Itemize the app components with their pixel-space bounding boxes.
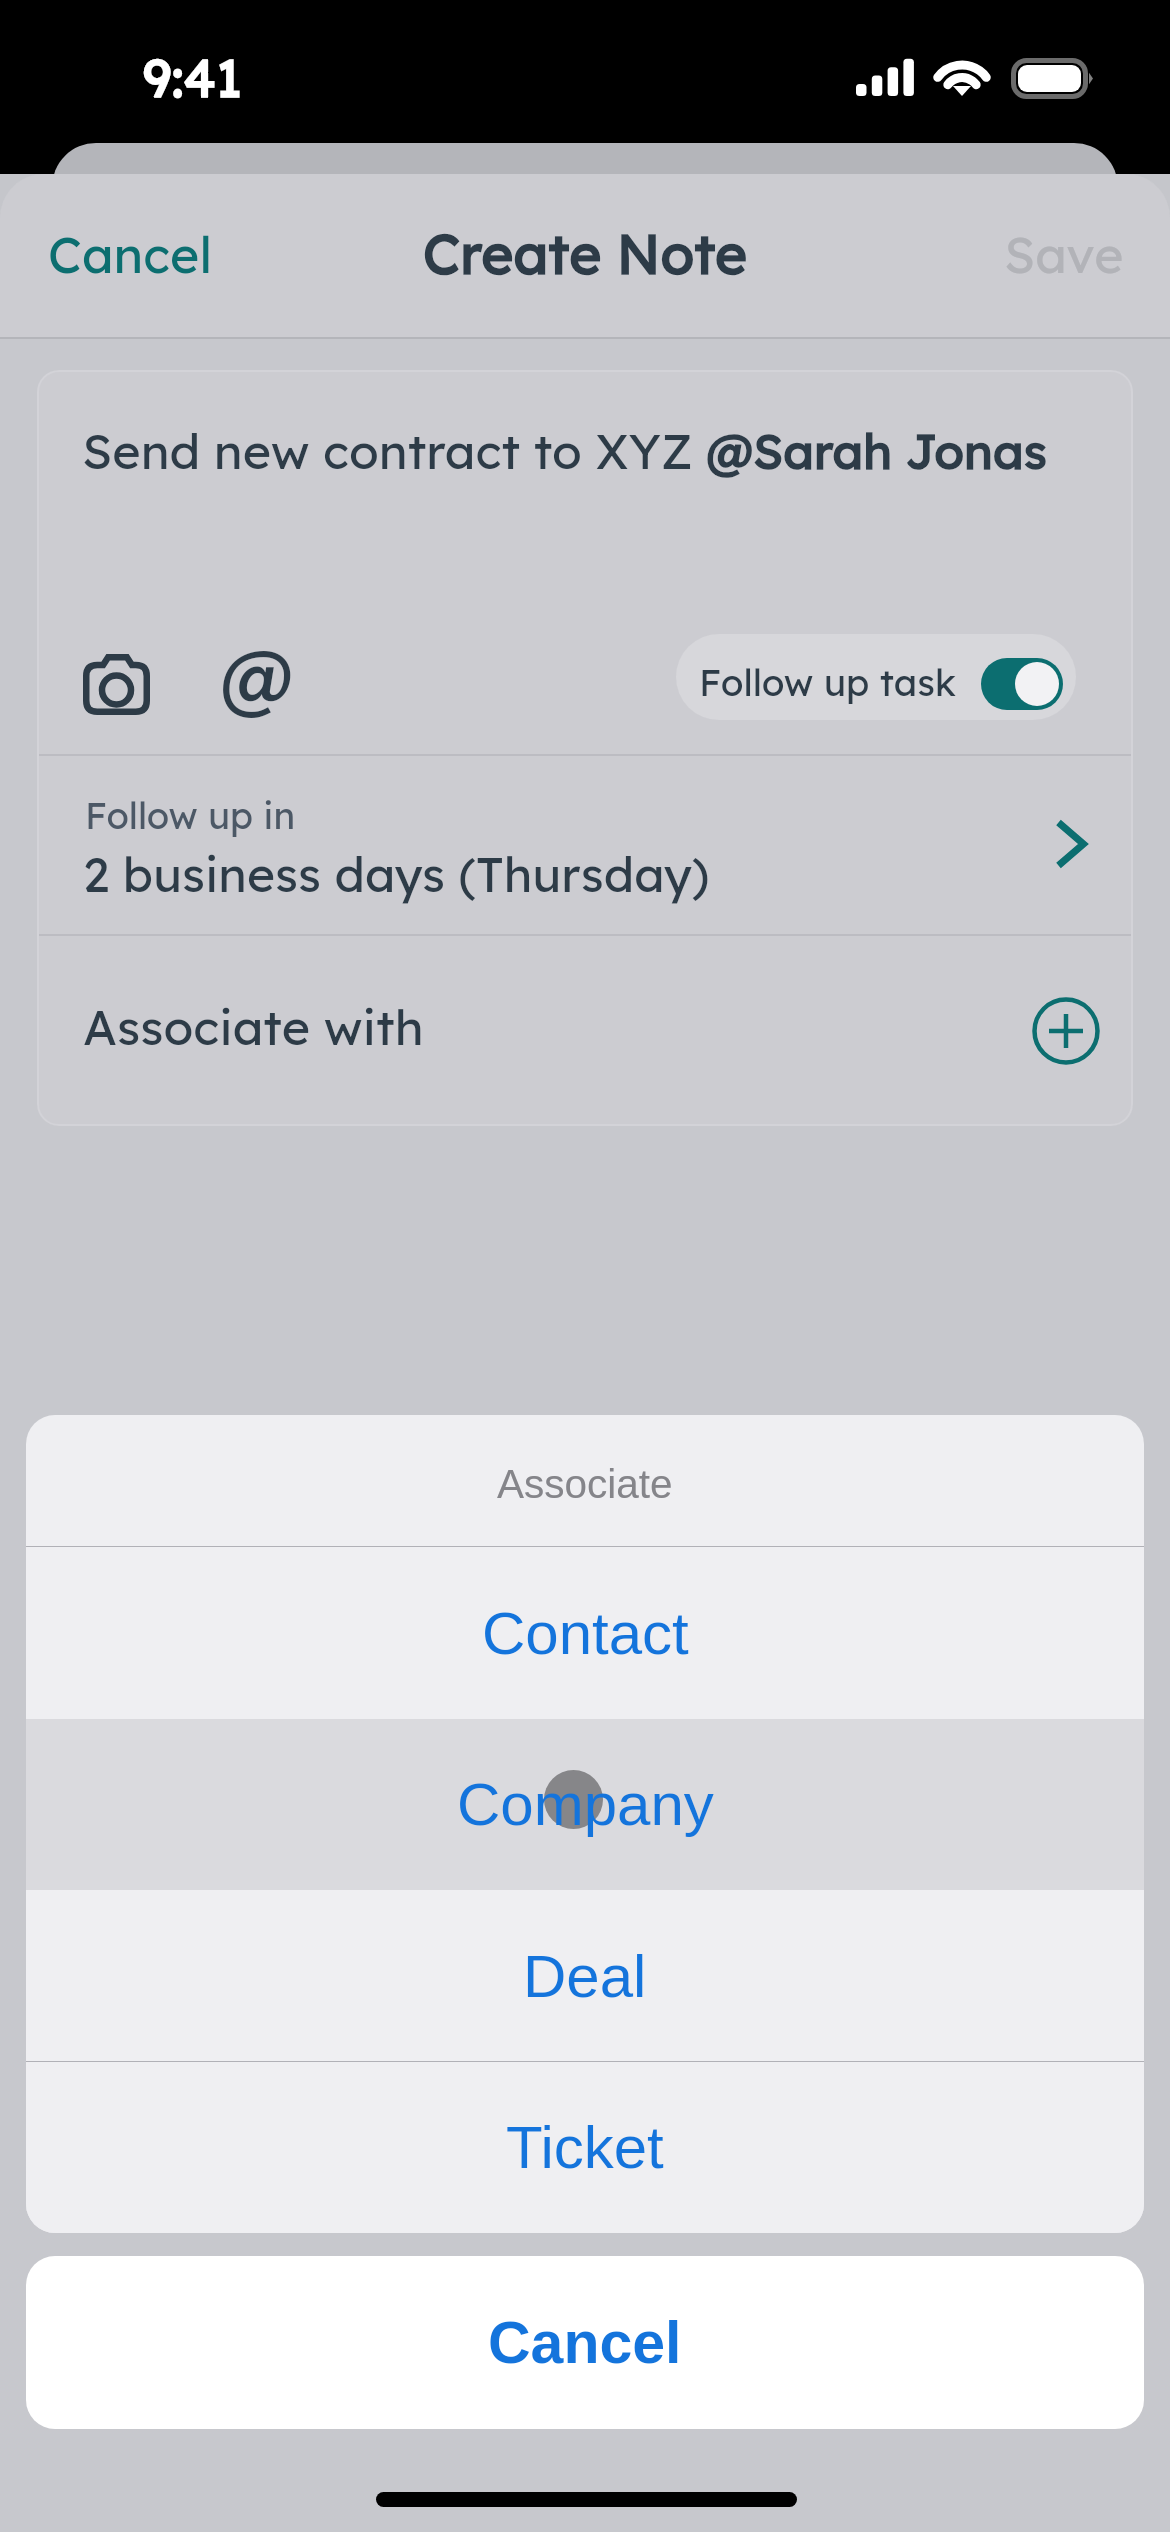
button[interactable]: Associate with xyxy=(37,936,1133,1126)
staticText: 9:41 xyxy=(143,45,242,110)
button[interactable]: Contact xyxy=(26,1547,1144,1719)
staticText: Send new contract to XYZ @Sarah Jonas xyxy=(82,420,1047,481)
staticText: Contact xyxy=(482,1600,689,1667)
staticText: Create Note xyxy=(423,219,748,288)
staticText: Associate xyxy=(497,1461,673,1506)
button[interactable]: Company xyxy=(26,1719,1144,1890)
button[interactable]: Add photo xyxy=(63,636,170,732)
staticText: Ticket xyxy=(506,2114,664,2181)
button[interactable]: Cancel xyxy=(8,174,418,338)
staticText: @ xyxy=(220,630,294,725)
staticText: Cancel xyxy=(48,223,212,286)
staticText: Follow up task xyxy=(699,659,956,705)
button[interactable]: Follow up in xyxy=(37,756,1133,934)
staticText: Follow up in xyxy=(85,792,296,838)
button[interactable]: Save xyxy=(810,174,1170,338)
staticText: Company xyxy=(457,1771,714,1838)
staticText: 2 business days (Thursday) xyxy=(83,844,710,904)
button[interactable]: Add association xyxy=(1016,981,1116,1081)
button[interactable]: Ticket xyxy=(26,2062,1144,2233)
staticText: Associate with xyxy=(83,996,424,1057)
button[interactable]: Deal xyxy=(26,1890,1144,2062)
staticText: Deal xyxy=(523,1943,647,2010)
button[interactable]: Cancel xyxy=(26,2256,1144,2429)
button[interactable]: Follow up task toggle, on xyxy=(981,658,1063,710)
staticText: Cancel xyxy=(488,2310,682,2376)
button[interactable]: Mention someone xyxy=(203,636,310,732)
button[interactable]: Follow up task xyxy=(676,634,1076,720)
staticText: Save xyxy=(1004,223,1124,286)
